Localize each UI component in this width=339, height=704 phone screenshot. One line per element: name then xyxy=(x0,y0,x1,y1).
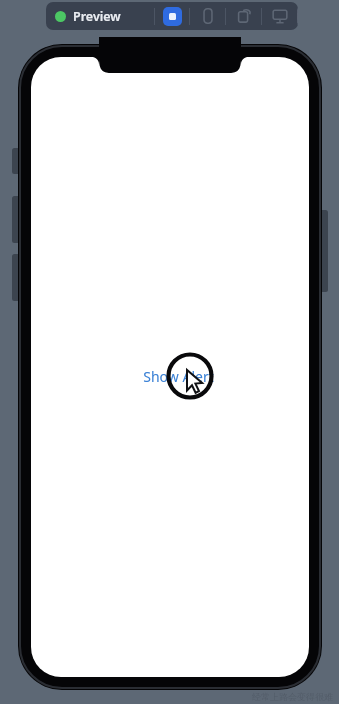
button[interactable]: Preview xyxy=(46,2,154,30)
button[interactable]: Preview on monitor xyxy=(262,2,297,30)
button[interactable]: Select device xyxy=(190,2,225,30)
button[interactable]: Show Alert xyxy=(143,366,214,387)
button[interactable]: Live preview xyxy=(155,2,189,30)
staticText: Show Alert xyxy=(143,367,214,386)
staticText: Preview xyxy=(73,8,121,25)
staticText: 经常上路会变得很难 xyxy=(252,691,333,702)
button[interactable]: Rotate device xyxy=(226,2,261,30)
